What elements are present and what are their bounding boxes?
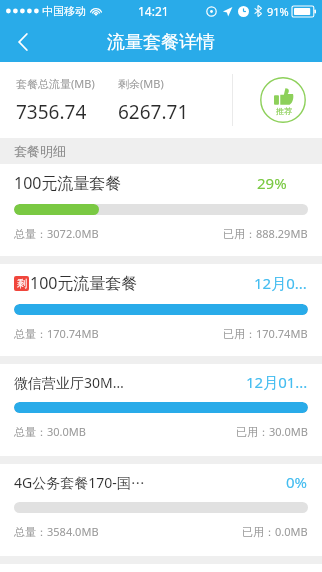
button[interactable]: 4G公务套餐170-国内流量包3.5... [0,464,322,556]
button[interactable]: 套餐总流量(MB) [0,62,322,138]
staticText: 12月01... [246,372,308,392]
button[interactable]: Back [0,22,46,62]
staticText: 100元流量套餐 [14,172,122,194]
staticText: 套餐明细 [14,143,66,159]
staticText: 总量：3584.0MB [14,524,99,539]
button[interactable]: 推荐 [260,77,306,123]
button[interactable]: 剩 [0,264,322,356]
staticText: 已用：888.29MB [223,226,308,241]
staticText: 套餐总流量(MB) [16,76,95,91]
staticText: 已用：30.0MB [236,424,308,439]
staticText: 中国移动 [42,4,86,18]
staticText: 12月0... [254,273,307,293]
staticText: 0% [286,472,308,492]
staticText: 7356.74 [16,99,87,125]
button[interactable]: 100元流量套餐 [0,164,322,256]
staticText: 100元流量套餐 [30,272,138,294]
staticText: 总量：3072.0MB [14,226,99,241]
staticText: 总量：170.74MB [14,326,99,341]
button[interactable]: 微信营业厅30M省内融合流量 [0,364,322,456]
staticText: 6267.71 [118,99,189,125]
staticText: 剩 [17,277,27,290]
staticText: 微信营业厅30M省内融合流量 [14,373,127,392]
staticText: 14:21 [138,3,169,19]
staticText: 推荐 [276,106,292,116]
staticText: 已用：170.74MB [223,326,308,341]
staticText: 剩余(MB) [118,76,164,91]
staticText: 91% [267,4,289,19]
staticText: 流量套餐详情 [107,31,215,54]
staticText: 29% [257,173,287,193]
staticText: 4G公务套餐170-国内流量包3.5... [14,473,147,492]
staticText: 总量：30.0MB [14,424,86,439]
staticText: 已用：0.0MB [242,524,308,539]
